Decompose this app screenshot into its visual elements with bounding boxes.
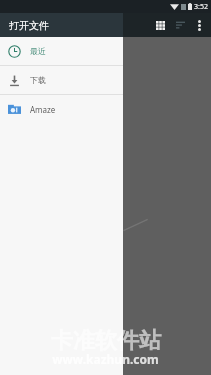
staticText: 下载 [30,75,46,85]
button[interactable]: Amaze [0,95,123,123]
staticText: www.kazhun.com [52,351,159,367]
button[interactable]: Sort [170,15,190,35]
button[interactable]: 下载 [0,66,123,94]
staticText: 打开文件 [9,19,49,32]
staticText: Amaze [30,104,56,115]
staticText: 3:52 [194,2,208,12]
staticText: 卡准软件站 [51,327,161,355]
button[interactable]: Grid view [150,15,170,35]
button[interactable]: 最近 [0,37,123,65]
button[interactable]: More options [190,16,208,34]
staticText: 最近 [30,46,46,56]
